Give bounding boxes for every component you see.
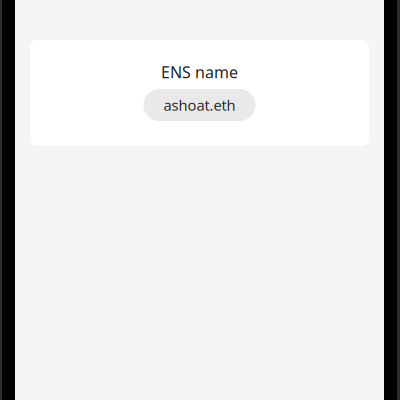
staticText: ashoat.eth [163, 95, 235, 115]
staticText: ENS name [161, 61, 238, 83]
button[interactable]: ashoat.eth [143, 89, 255, 121]
